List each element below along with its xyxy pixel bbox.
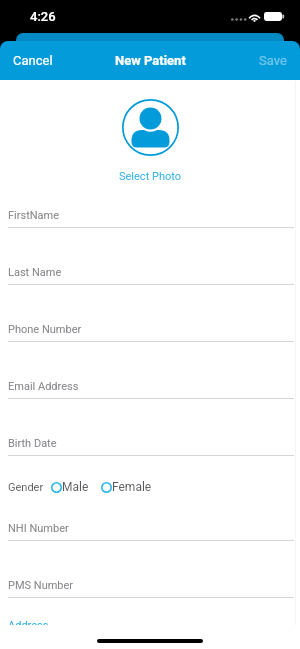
staticText: Birth Date (8, 437, 57, 450)
button[interactable]: Phone Number (0, 285, 300, 342)
button[interactable]: PMS Number (0, 541, 300, 598)
button[interactable]: Cancel (0, 44, 67, 77)
staticText: PMS Number (8, 579, 74, 592)
staticText: Email Address (8, 380, 79, 393)
button[interactable]: NHI Number (0, 484, 300, 541)
staticText: Phone Number (8, 323, 82, 336)
button[interactable]: Male (51, 475, 89, 499)
staticText: Address (8, 619, 49, 625)
button[interactable]: FirstName (0, 171, 300, 228)
staticText: FirstName (8, 209, 60, 222)
button[interactable]: Email Address (0, 342, 300, 399)
staticText: Gender (8, 481, 44, 494)
button[interactable]: Save (245, 44, 300, 77)
staticText: 4:26 (30, 9, 56, 24)
button[interactable]: Address (0, 581, 300, 625)
staticText: Male (62, 480, 89, 494)
button[interactable]: Female (101, 475, 152, 499)
staticText: New Patient (115, 53, 186, 68)
button[interactable]: Select Photo (0, 99, 300, 183)
button[interactable]: Last Name (0, 228, 300, 285)
button[interactable]: Birth Date (0, 399, 300, 456)
staticText: Female (112, 480, 152, 494)
staticText: NHI Number (8, 522, 69, 535)
staticText: Cancel (13, 53, 53, 68)
staticText: Select Photo (119, 170, 181, 183)
staticText: Save (259, 53, 287, 68)
staticText: Last Name (8, 266, 62, 279)
